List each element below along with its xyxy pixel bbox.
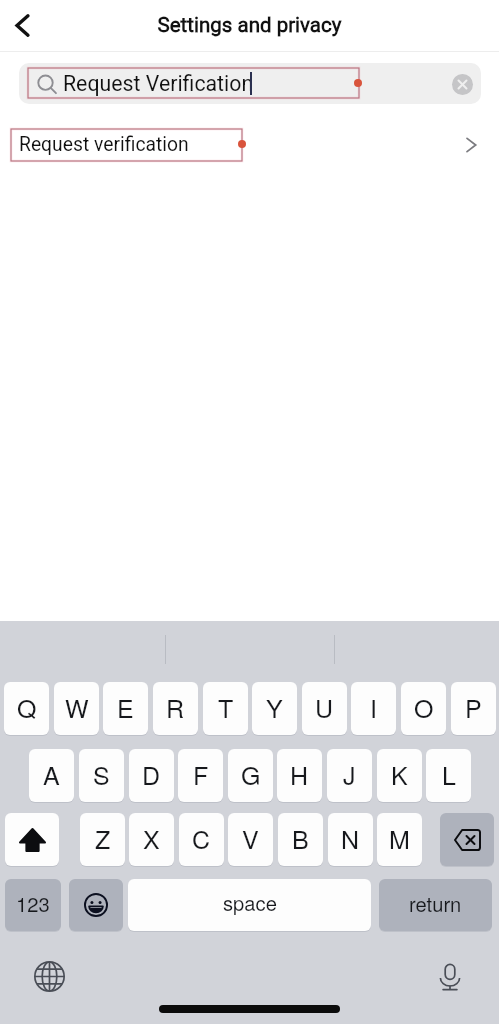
- button[interactable]: M: [377, 813, 422, 867]
- button[interactable]: N: [328, 813, 373, 867]
- button[interactable]: W: [54, 682, 99, 736]
- staticText: T: [218, 689, 234, 725]
- staticText: S: [93, 756, 110, 792]
- staticText: B: [292, 820, 309, 856]
- button[interactable]: G: [228, 749, 273, 803]
- staticText: Q: [17, 689, 37, 725]
- button[interactable]: F: [178, 749, 223, 803]
- button[interactable]: A: [29, 749, 74, 803]
- staticText: Request verification: [19, 133, 189, 156]
- button[interactable]: [69, 879, 123, 932]
- staticText: 123: [16, 889, 50, 918]
- button[interactable]: U: [302, 682, 347, 736]
- button[interactable]: 123: [5, 879, 61, 932]
- staticText: G: [241, 756, 261, 792]
- staticText: C: [192, 820, 211, 856]
- button[interactable]: X: [129, 813, 174, 867]
- button[interactable]: H: [277, 749, 322, 803]
- staticText: M: [389, 820, 410, 856]
- staticText: return: [409, 889, 462, 918]
- button[interactable]: P: [451, 682, 496, 736]
- button[interactable]: Dictate: [432, 959, 467, 994]
- button[interactable]: B: [278, 813, 323, 867]
- staticText: H: [290, 756, 309, 792]
- staticText: F: [193, 756, 209, 792]
- button[interactable]: Change keyboard: [32, 959, 67, 994]
- staticText: V: [242, 820, 259, 856]
- button[interactable]: R: [153, 682, 198, 736]
- button[interactable]: J: [327, 749, 372, 803]
- staticText: Request Verification: [63, 71, 254, 96]
- button[interactable]: E: [103, 682, 148, 736]
- staticText: L: [442, 756, 456, 792]
- staticText: N: [341, 820, 360, 856]
- staticText: W: [65, 689, 89, 725]
- button[interactable]: Z: [80, 813, 125, 867]
- staticText: J: [343, 756, 356, 792]
- button[interactable]: Q: [4, 682, 49, 736]
- staticText: U: [315, 689, 334, 725]
- button[interactable]: K: [377, 749, 422, 803]
- button[interactable]: D: [129, 749, 174, 803]
- button[interactable]: [440, 813, 494, 867]
- button[interactable]: space: [128, 879, 371, 932]
- button[interactable]: C: [179, 813, 224, 867]
- staticText: K: [391, 756, 408, 792]
- button[interactable]: T: [203, 682, 248, 736]
- button[interactable]: I: [351, 682, 396, 736]
- staticText: R: [166, 689, 185, 725]
- staticText: Y: [266, 689, 283, 725]
- staticText: P: [465, 689, 482, 725]
- button[interactable]: Clear text: [451, 73, 473, 95]
- staticText: Z: [95, 820, 111, 856]
- button[interactable]: Y: [252, 682, 297, 736]
- staticText: I: [370, 689, 377, 725]
- button[interactable]: [5, 813, 59, 867]
- button[interactable]: return: [379, 879, 492, 932]
- staticText: X: [143, 820, 160, 856]
- button[interactable]: Back: [0, 0, 48, 50]
- button[interactable]: Request Verification: [19, 63, 481, 104]
- button[interactable]: S: [79, 749, 124, 803]
- staticText: D: [142, 756, 161, 792]
- staticText: space: [223, 888, 277, 917]
- button[interactable]: O: [401, 682, 446, 736]
- button[interactable]: Request verification: [0, 118, 499, 172]
- button[interactable]: L: [426, 749, 471, 803]
- staticText: A: [43, 756, 60, 792]
- button[interactable]: V: [228, 813, 273, 867]
- staticText: Settings and privacy: [0, 13, 499, 37]
- staticText: O: [414, 689, 434, 725]
- staticText: E: [117, 689, 134, 725]
